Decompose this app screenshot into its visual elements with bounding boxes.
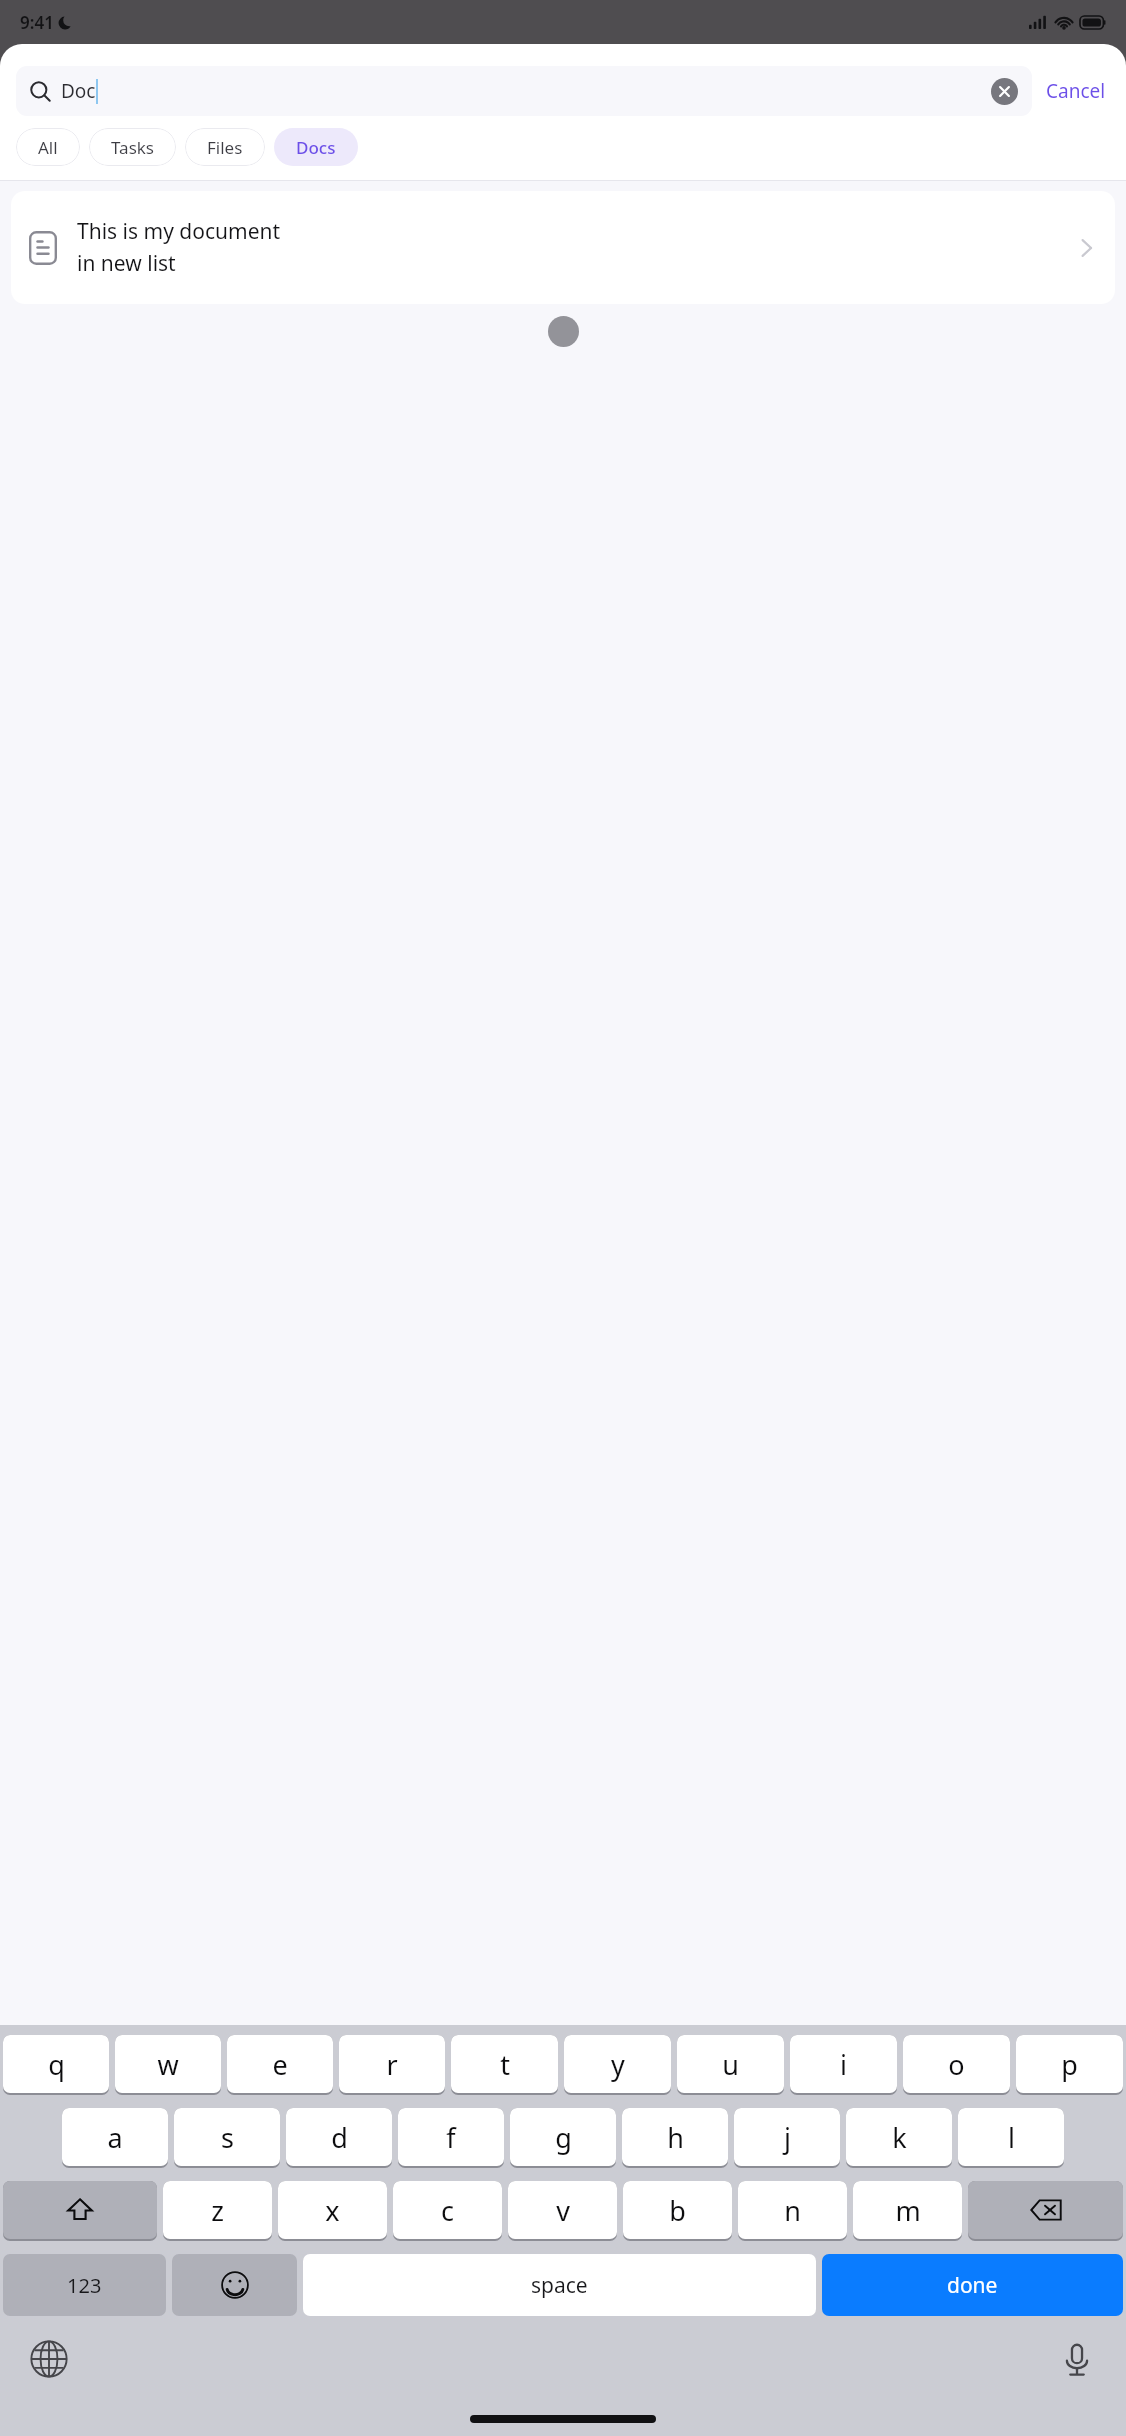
button[interactable]: p xyxy=(1016,2035,1123,2093)
staticText: Files xyxy=(207,136,243,159)
staticText: x xyxy=(325,2192,340,2229)
button[interactable]: Files xyxy=(185,128,265,166)
button[interactable]: Cancel xyxy=(1032,72,1108,110)
staticText: p xyxy=(1061,2046,1078,2083)
staticText: Doc xyxy=(61,78,96,104)
button[interactable]: Backspace xyxy=(968,2181,1123,2239)
button[interactable]: done xyxy=(822,2254,1123,2316)
button[interactable]: v xyxy=(508,2181,617,2239)
staticText: q xyxy=(48,2046,65,2083)
button[interactable]: e xyxy=(227,2035,333,2093)
button[interactable]: Shift xyxy=(3,2181,157,2239)
button[interactable]: space xyxy=(303,2254,816,2316)
button[interactable]: y xyxy=(564,2035,671,2093)
staticText: m xyxy=(895,2192,921,2229)
staticText: l xyxy=(1008,2119,1015,2156)
button[interactable]: j xyxy=(734,2108,840,2166)
staticText: in new list xyxy=(77,249,176,278)
button[interactable]: a xyxy=(62,2108,168,2166)
staticText: done xyxy=(947,2271,998,2300)
staticText: r xyxy=(386,2046,398,2083)
staticText: Cancel xyxy=(1046,78,1106,104)
button[interactable]: Emoji xyxy=(172,2254,297,2316)
staticText: z xyxy=(211,2192,224,2229)
button[interactable]: b xyxy=(623,2181,732,2239)
staticText: i xyxy=(840,2046,847,2083)
staticText: e xyxy=(272,2046,288,2083)
button[interactable]: u xyxy=(677,2035,784,2093)
button[interactable]: l xyxy=(958,2108,1064,2166)
staticText: 9:41 xyxy=(20,11,54,34)
button[interactable]: k xyxy=(846,2108,952,2166)
staticText: u xyxy=(722,2046,739,2083)
button[interactable]: x xyxy=(278,2181,387,2239)
button[interactable]: Clear text xyxy=(991,78,1018,105)
button[interactable]: g xyxy=(510,2108,616,2166)
staticText: s xyxy=(221,2119,234,2156)
staticText: h xyxy=(667,2119,684,2156)
button[interactable]: r xyxy=(339,2035,445,2093)
button[interactable]: Docs xyxy=(274,128,358,166)
staticText: k xyxy=(892,2119,907,2156)
button[interactable]: c xyxy=(393,2181,502,2239)
button[interactable]: 123 xyxy=(3,2254,166,2316)
staticText: v xyxy=(556,2192,570,2229)
button[interactable]: Change keyboard xyxy=(26,2336,72,2382)
staticText: o xyxy=(948,2046,965,2083)
button[interactable]: d xyxy=(286,2108,392,2166)
button[interactable]: o xyxy=(903,2035,1010,2093)
button[interactable]: m xyxy=(853,2181,962,2239)
staticText: f xyxy=(446,2119,456,2156)
staticText: Docs xyxy=(296,136,336,159)
button[interactable]: h xyxy=(622,2108,728,2166)
button[interactable]: t xyxy=(451,2035,558,2093)
staticText: Tasks xyxy=(111,136,154,159)
staticText: n xyxy=(784,2192,801,2229)
button[interactable]: f xyxy=(398,2108,504,2166)
button[interactable]: Tasks xyxy=(89,128,176,166)
button[interactable]: q xyxy=(3,2035,109,2093)
button[interactable]: z xyxy=(163,2181,272,2239)
staticText: g xyxy=(555,2119,572,2156)
button[interactable]: Dictation xyxy=(1054,2336,1100,2382)
button[interactable]: w xyxy=(115,2035,221,2093)
staticText: y xyxy=(611,2046,625,2083)
button[interactable]: s xyxy=(174,2108,280,2166)
button[interactable]: Doc xyxy=(16,66,1032,116)
staticText: b xyxy=(669,2192,686,2229)
staticText: j xyxy=(784,2119,791,2156)
staticText: t xyxy=(500,2046,510,2083)
staticText: d xyxy=(331,2119,348,2156)
staticText: c xyxy=(441,2192,454,2229)
staticText: All xyxy=(38,136,58,159)
staticText: 123 xyxy=(67,2272,102,2299)
staticText: This is my document xyxy=(77,217,281,246)
button[interactable]: i xyxy=(790,2035,897,2093)
staticText: a xyxy=(107,2119,123,2156)
button[interactable]: n xyxy=(738,2181,847,2239)
button[interactable]: This is my document xyxy=(11,191,1115,304)
staticText: space xyxy=(531,2271,588,2300)
staticText: w xyxy=(157,2046,179,2083)
button[interactable]: All xyxy=(16,128,80,166)
